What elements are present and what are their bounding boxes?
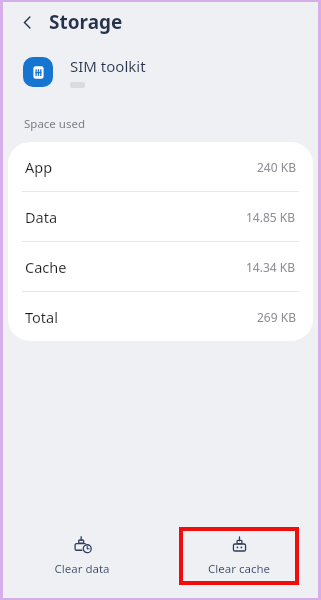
button[interactable]: Total [8, 292, 313, 341]
button[interactable]: App [8, 142, 313, 191]
staticText: App [25, 157, 53, 177]
button[interactable]: Clear data [42, 531, 122, 582]
staticText: Cache [25, 257, 67, 277]
button[interactable]: Clear cache [196, 531, 282, 581]
button[interactable]: Cache [8, 242, 313, 291]
staticText: Total [25, 307, 58, 327]
staticText: Space used [24, 116, 86, 132]
button[interactable]: Data [8, 192, 313, 241]
button[interactable]: Back [14, 9, 40, 35]
staticText: Clear data [54, 561, 110, 577]
staticText: 269 KB [257, 309, 296, 325]
staticText: Data [25, 207, 58, 227]
staticText: SIM toolkit [70, 56, 146, 76]
staticText: 14.85 KB [246, 209, 296, 225]
staticText: 240 KB [257, 159, 296, 175]
staticText: 14.34 KB [246, 259, 296, 275]
staticText: Clear cache [208, 561, 270, 576]
staticText: Storage [49, 9, 123, 35]
